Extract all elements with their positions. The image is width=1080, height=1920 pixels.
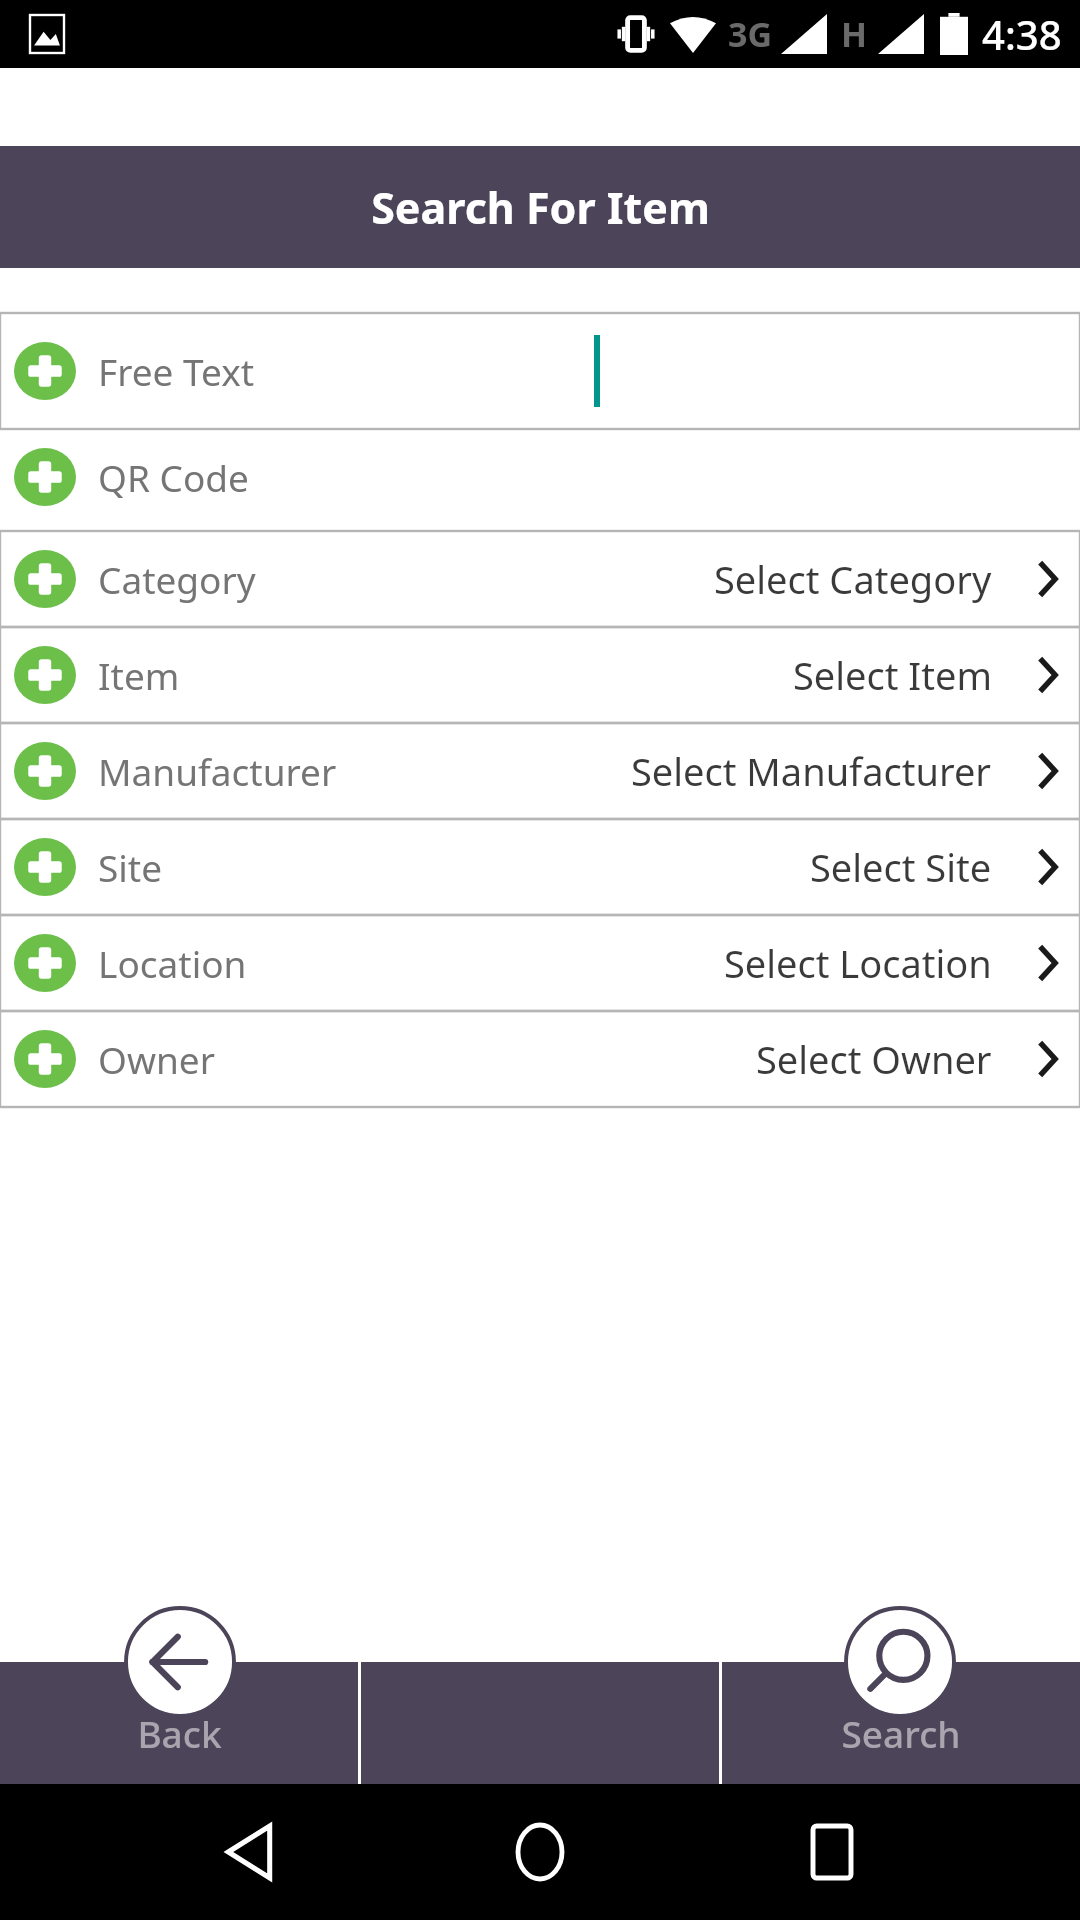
button[interactable]: Location [0, 915, 1080, 1011]
button[interactable]: Free Text [0, 313, 1080, 429]
button[interactable]: Owner [0, 1011, 1080, 1107]
button[interactable]: Manufacturer [0, 723, 1080, 819]
staticText: Item [98, 650, 180, 700]
staticText: Select Location [724, 937, 992, 989]
staticText: Site [98, 842, 163, 892]
staticText: Select Category [714, 553, 992, 605]
staticText: Select Owner [756, 1033, 992, 1085]
button[interactable]: Search [844, 1606, 956, 1718]
button[interactable]: Home [497, 1809, 583, 1895]
staticText: Select Item [793, 649, 992, 701]
button[interactable]: Item [0, 627, 1080, 723]
staticText: Search [841, 1708, 961, 1758]
staticText: 4:38 [982, 7, 1062, 61]
staticText: Search For Item [371, 178, 710, 237]
staticText: Select Site [810, 841, 992, 893]
button[interactable]: QR Code [0, 429, 1080, 525]
button[interactable]: Recent apps [789, 1809, 875, 1895]
button[interactable]: Site [0, 819, 1080, 915]
staticText: Free Text [98, 346, 255, 396]
button[interactable]: Category [0, 531, 1080, 627]
staticText: Category [98, 554, 256, 604]
button[interactable]: Back [124, 1606, 236, 1718]
staticText: Manufacturer [98, 746, 337, 796]
staticText: Select Manufacturer [631, 745, 992, 797]
staticText: QR Code [98, 452, 249, 502]
staticText: 3G [728, 11, 773, 57]
button[interactable]: Search [722, 1662, 1080, 1784]
staticText: Back [137, 1708, 222, 1758]
staticText: Location [98, 938, 247, 988]
staticText: H [841, 11, 868, 57]
staticText: Owner [98, 1034, 215, 1084]
button[interactable]: Back [206, 1809, 292, 1895]
button[interactable]: Back [0, 1662, 358, 1784]
